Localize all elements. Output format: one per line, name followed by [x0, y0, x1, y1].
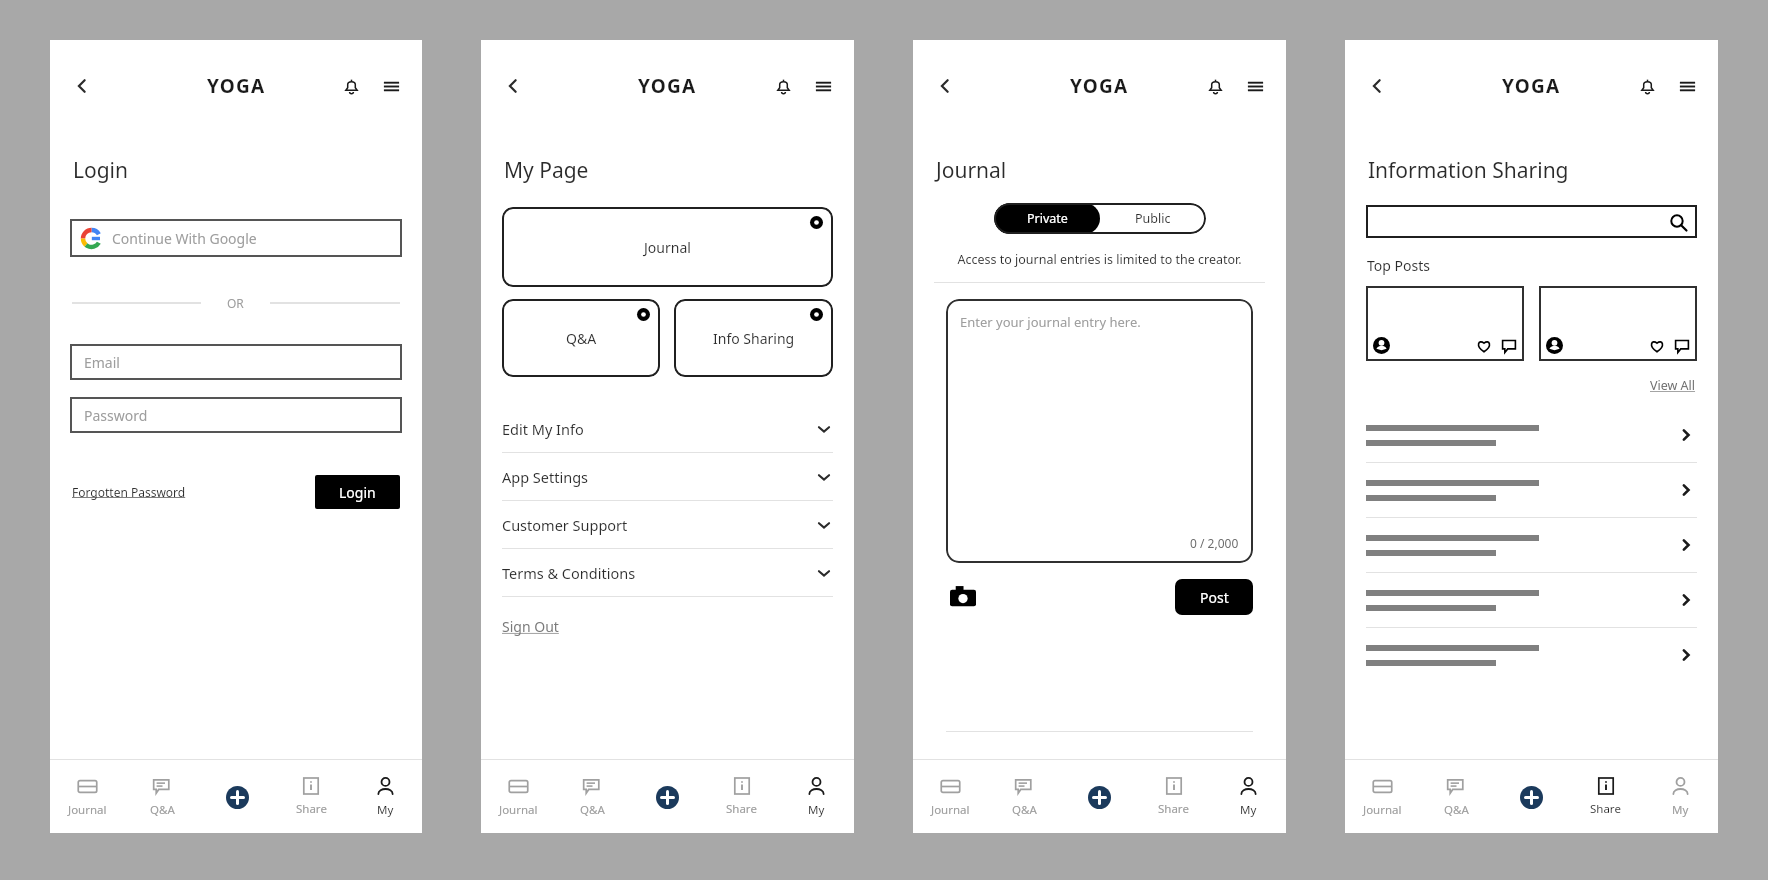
- button[interactable]: Share: [1568, 760, 1643, 833]
- staticText: Q&A: [1012, 802, 1037, 818]
- button[interactable]: Notifications: [766, 69, 800, 103]
- staticText: Customer Support: [502, 515, 628, 535]
- button[interactable]: Continue With Google: [70, 219, 402, 257]
- button[interactable]: Add: [647, 777, 687, 817]
- button[interactable]: Like: [1476, 338, 1492, 354]
- button[interactable]: Journal: [913, 760, 987, 833]
- button[interactable]: My: [779, 760, 854, 833]
- button[interactable]: Like: [1539, 286, 1697, 361]
- staticText: Journal: [1363, 802, 1402, 818]
- button[interactable]: Journal: [50, 760, 125, 833]
- button[interactable]: [1366, 573, 1697, 627]
- staticText: Terms & Conditions: [502, 563, 636, 583]
- staticText: 0 / 2,000: [1190, 535, 1239, 551]
- staticText: My: [377, 802, 394, 818]
- staticText: OR: [227, 295, 244, 311]
- button[interactable]: Menu: [374, 69, 408, 103]
- button[interactable]: Menu: [1670, 69, 1704, 103]
- button[interactable]: Add photo: [946, 580, 980, 614]
- button[interactable]: Comment: [1501, 338, 1517, 354]
- staticText: Post: [1200, 588, 1229, 607]
- button[interactable]: [1366, 628, 1697, 682]
- button[interactable]: Add: [217, 777, 257, 817]
- button[interactable]: Journal: [502, 207, 833, 287]
- staticText: Top Posts: [1367, 256, 1430, 275]
- button[interactable]: Terms & Conditions: [502, 549, 833, 597]
- staticText: Password: [84, 406, 148, 425]
- staticText: Share: [1158, 801, 1189, 817]
- staticText: YOGA: [1070, 73, 1129, 99]
- button[interactable]: Like: [1366, 286, 1524, 361]
- button[interactable]: My: [348, 760, 422, 833]
- staticText: Private: [1027, 210, 1068, 227]
- staticText: Login: [73, 156, 129, 185]
- staticText: Email: [84, 353, 120, 372]
- button[interactable]: Add: [1079, 777, 1119, 817]
- staticText: Access to journal entries is limited to …: [913, 251, 1286, 268]
- button[interactable]: Menu: [806, 69, 840, 103]
- button[interactable]: Back: [495, 68, 531, 104]
- button[interactable]: [1366, 408, 1697, 462]
- button[interactable]: Password: [70, 397, 402, 433]
- button[interactable]: Back: [927, 68, 963, 104]
- button[interactable]: Edit My Info: [502, 405, 833, 453]
- button[interactable]: Public: [1100, 203, 1206, 234]
- button[interactable]: Share: [274, 760, 348, 833]
- button[interactable]: Back: [1359, 68, 1395, 104]
- staticText: Journal: [499, 802, 538, 818]
- staticText: Continue With Google: [112, 229, 257, 248]
- button[interactable]: Search: [1366, 205, 1697, 238]
- button[interactable]: Q&A: [1419, 760, 1493, 833]
- button[interactable]: Notifications: [334, 69, 368, 103]
- button[interactable]: Back: [64, 68, 100, 104]
- staticText: Q&A: [150, 802, 175, 818]
- button[interactable]: Share: [1136, 760, 1211, 833]
- button[interactable]: Q&A: [502, 299, 660, 377]
- staticText: Journal: [68, 802, 107, 818]
- staticText: My: [1240, 802, 1257, 818]
- staticText: Enter your journal entry here.: [960, 313, 1141, 331]
- button[interactable]: Email: [70, 344, 402, 380]
- button[interactable]: My: [1643, 760, 1718, 833]
- staticText: Share: [726, 801, 757, 817]
- button[interactable]: Login: [315, 475, 400, 509]
- button[interactable]: [1366, 518, 1697, 572]
- staticText: YOGA: [1502, 73, 1561, 99]
- staticText: YOGA: [638, 73, 697, 99]
- button[interactable]: Notifications: [1198, 69, 1232, 103]
- button[interactable]: Comment: [1674, 338, 1690, 354]
- staticText: Share: [296, 801, 327, 817]
- button[interactable]: Share: [704, 760, 779, 833]
- button[interactable]: Customer Support: [502, 501, 833, 549]
- button[interactable]: App Settings: [502, 453, 833, 501]
- staticText: Q&A: [1444, 802, 1469, 818]
- button[interactable]: Sign Out: [502, 617, 559, 636]
- button[interactable]: [1366, 463, 1697, 517]
- button[interactable]: Q&A: [987, 760, 1061, 833]
- button[interactable]: Post: [1175, 579, 1253, 615]
- button[interactable]: Forgotten Password: [72, 484, 186, 500]
- button[interactable]: Journal: [1345, 760, 1419, 833]
- button[interactable]: Menu: [1238, 69, 1272, 103]
- staticText: Q&A: [566, 329, 597, 348]
- button[interactable]: Add: [1511, 777, 1551, 817]
- staticText: Edit My Info: [502, 419, 584, 439]
- button[interactable]: Q&A: [125, 760, 200, 833]
- button[interactable]: Info Sharing: [674, 299, 833, 377]
- staticText: My: [1672, 802, 1689, 818]
- staticText: My: [808, 802, 825, 818]
- staticText: Journal: [644, 238, 691, 257]
- button[interactable]: Like: [1649, 338, 1665, 354]
- button[interactable]: Enter your journal entry here.: [946, 299, 1253, 563]
- staticText: My Page: [504, 156, 589, 185]
- staticText: Information Sharing: [1368, 156, 1569, 185]
- button[interactable]: Notifications: [1630, 69, 1664, 103]
- button[interactable]: Private: [994, 203, 1100, 234]
- staticText: Journal: [936, 156, 1007, 185]
- staticText: Public: [1135, 210, 1171, 227]
- button[interactable]: Journal: [481, 760, 555, 833]
- button[interactable]: My: [1211, 760, 1286, 833]
- staticText: Info Sharing: [713, 329, 795, 348]
- button[interactable]: View All: [1650, 377, 1696, 394]
- button[interactable]: Q&A: [555, 760, 629, 833]
